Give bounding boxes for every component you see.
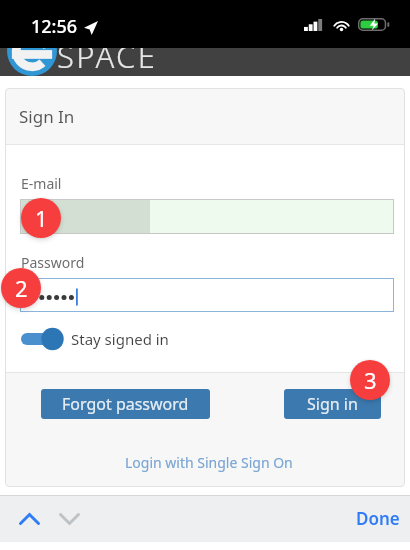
staticText: Stay signed in	[71, 329, 169, 349]
staticText: 2	[15, 273, 28, 303]
staticText: Sign In	[19, 105, 75, 128]
button[interactable]: Login with Single Sign On	[125, 453, 293, 472]
staticText: 12:56	[31, 14, 78, 39]
button[interactable]: Stay signed in	[16, 324, 171, 354]
staticText: Password	[21, 253, 85, 272]
staticText: 1	[35, 203, 48, 233]
button[interactable]	[20, 278, 394, 312]
button[interactable]: Previous field	[12, 495, 46, 542]
button[interactable]	[20, 199, 394, 234]
staticText: E-mail	[21, 174, 62, 193]
button[interactable]: Sign in	[284, 389, 381, 419]
button[interactable]: Forgot password	[41, 389, 210, 419]
staticText: SPACE	[57, 35, 158, 77]
button[interactable]: Done	[356, 507, 400, 530]
staticText: Forgot password	[62, 393, 189, 415]
button[interactable]: Next field	[52, 495, 86, 542]
staticText: Sign in	[307, 393, 358, 415]
staticText: 3	[364, 365, 377, 395]
